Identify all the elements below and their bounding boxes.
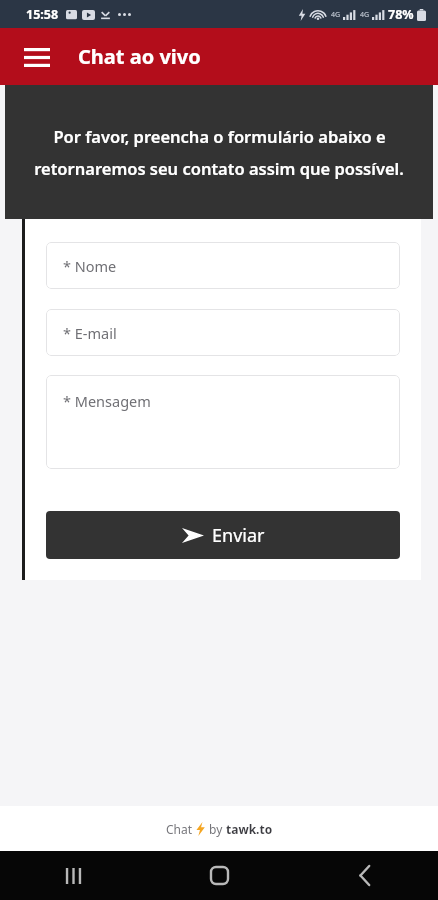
button[interactable]: Menu xyxy=(14,34,60,80)
staticText: * E-mail xyxy=(63,323,117,343)
button[interactable]: * Mensagem xyxy=(46,375,400,469)
button[interactable]: Enviar xyxy=(46,511,400,559)
button[interactable]: * E-mail xyxy=(46,309,400,356)
button[interactable]: Back xyxy=(292,851,438,900)
staticText: retornaremos seu contato assim que possí… xyxy=(34,157,404,179)
staticText: 15:58 xyxy=(26,6,59,23)
staticText: 4G xyxy=(331,10,341,20)
button[interactable]: * Nome xyxy=(46,242,400,289)
staticText: by xyxy=(209,821,226,837)
staticText: Chat ao vivo xyxy=(78,43,201,70)
staticText: * Nome xyxy=(63,256,117,276)
staticText: 4G xyxy=(360,10,370,20)
button[interactable]: Chat xyxy=(0,806,438,851)
staticText: * Mensagem xyxy=(63,391,151,411)
button[interactable]: Home xyxy=(146,851,292,900)
staticText: Chat xyxy=(166,821,196,837)
staticText: Por favor, preencha o formulário abaixo … xyxy=(53,125,386,147)
staticText: 78% xyxy=(388,6,414,23)
button[interactable]: Recents xyxy=(0,851,146,900)
staticText: Enviar xyxy=(212,523,265,548)
staticText: tawk.to xyxy=(226,821,273,837)
